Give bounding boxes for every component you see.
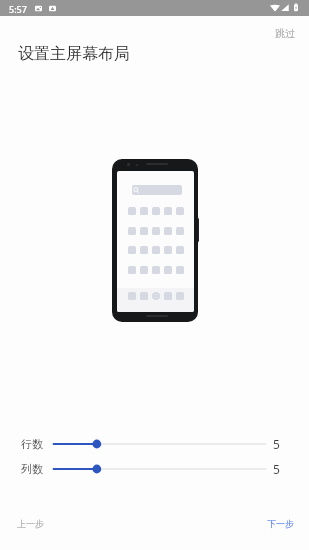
button[interactable]: 下一步 [261, 513, 300, 534]
button[interactable] [50, 460, 269, 478]
button[interactable] [50, 435, 269, 453]
staticText: 跳过 [275, 27, 295, 40]
staticText: 5:57 [9, 3, 27, 15]
staticText: 5 [273, 436, 280, 452]
staticText: 上一步 [17, 518, 44, 529]
staticText: 列数 [21, 462, 43, 476]
staticText: 下一步 [267, 518, 294, 529]
button[interactable]: 上一步 [11, 513, 50, 534]
staticText: 5 [273, 461, 280, 477]
button[interactable]: 跳过 [269, 24, 301, 43]
staticText: 行数 [21, 437, 43, 451]
staticText: 设置主屏幕布局 [18, 44, 130, 64]
